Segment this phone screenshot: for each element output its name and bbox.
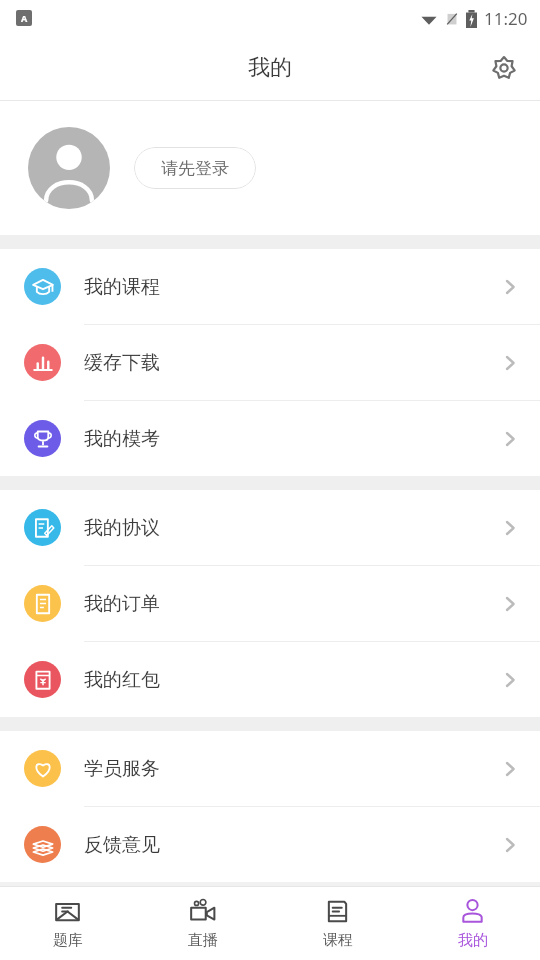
button[interactable]: 我的课程: [0, 249, 540, 324]
button[interactable]: 我的订单: [0, 566, 540, 641]
staticText: 我的: [458, 931, 488, 950]
staticText: A: [21, 12, 28, 24]
button[interactable]: 直播: [135, 887, 270, 960]
staticText: 我的订单: [84, 592, 160, 616]
staticText: 我的模考: [84, 427, 160, 451]
button[interactable]: 反馈意见: [0, 807, 540, 882]
button[interactable]: 我的模考: [0, 401, 540, 476]
button[interactable]: 课程: [270, 887, 405, 960]
staticText: 课程: [323, 931, 353, 950]
staticText: 我的课程: [84, 275, 160, 299]
staticText: 题库: [53, 931, 83, 950]
staticText: 我的协议: [84, 516, 160, 540]
button[interactable]: 我的: [405, 887, 540, 960]
button[interactable]: 学员服务: [0, 731, 540, 806]
button[interactable]: 我的红包: [0, 642, 540, 717]
staticText: 我的: [248, 54, 292, 82]
button[interactable]: 我的协议: [0, 490, 540, 565]
button[interactable]: Settings: [482, 46, 526, 90]
button[interactable]: 请先登录: [134, 147, 256, 189]
button[interactable]: Avatar: [28, 127, 110, 209]
staticText: 我的红包: [84, 668, 160, 692]
staticText: 直播: [188, 931, 218, 950]
staticText: 11:20: [484, 7, 528, 30]
button[interactable]: 题库: [0, 887, 135, 960]
button[interactable]: 缓存下载: [0, 325, 540, 400]
staticText: 缓存下载: [84, 351, 160, 375]
staticText: 反馈意见: [84, 833, 160, 857]
staticText: 请先登录: [161, 158, 229, 179]
staticText: 学员服务: [84, 757, 160, 781]
